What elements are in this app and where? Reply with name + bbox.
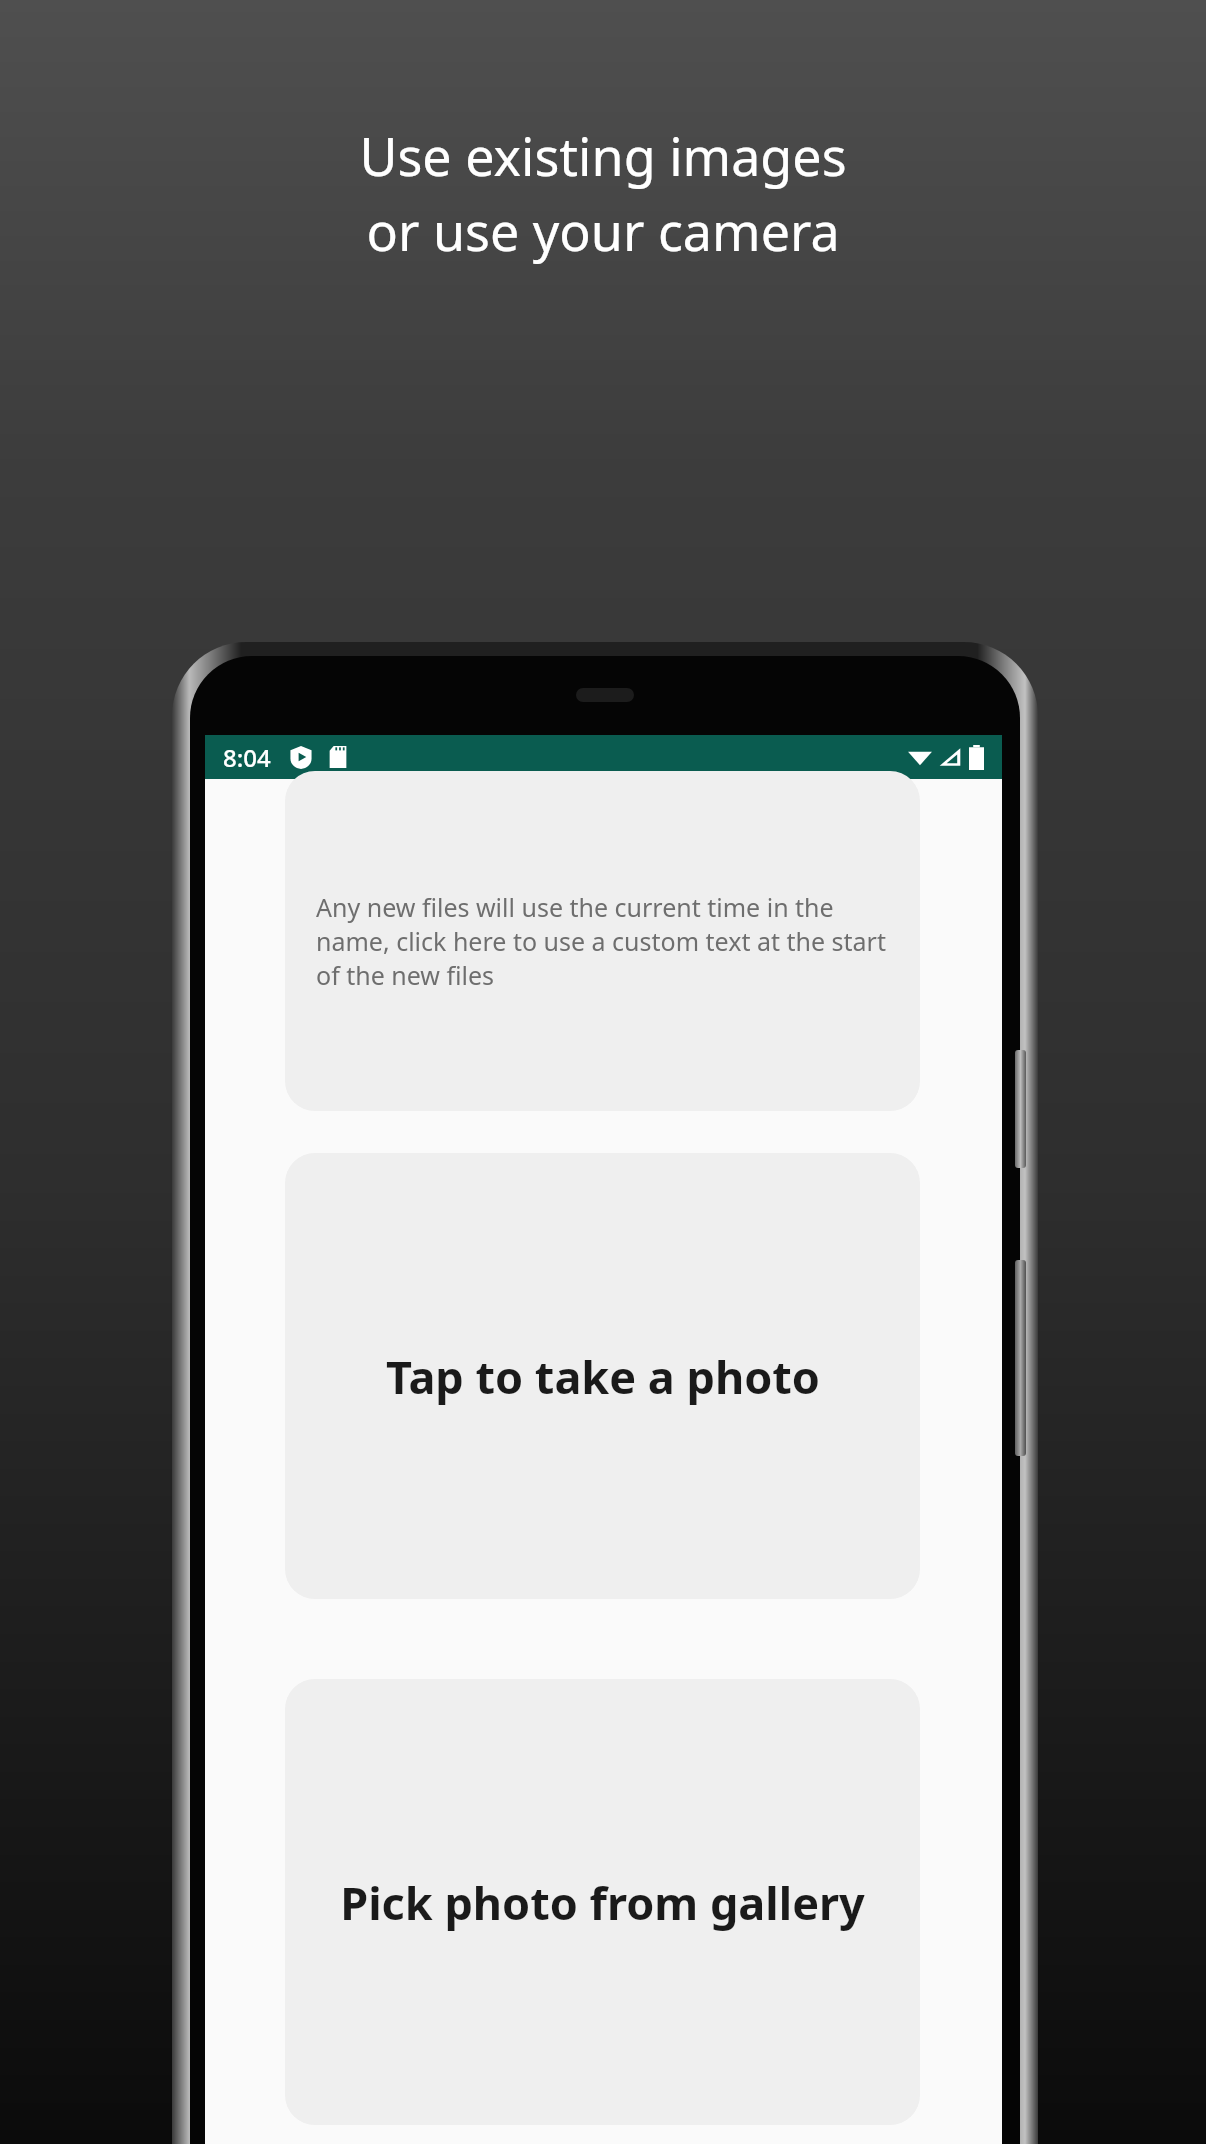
button[interactable]: Tap to take a photo: [285, 1153, 920, 1599]
button[interactable]: Any new files will use the current time …: [285, 771, 920, 1111]
staticText: Tap to take a photo: [386, 1346, 820, 1407]
staticText: Pick photo from gallery: [340, 1872, 865, 1933]
other: Protected: [289, 745, 313, 769]
staticText: Any new files will use the current time …: [316, 890, 889, 992]
button[interactable]: Pick photo from gallery: [285, 1679, 920, 2125]
other: Mobile signal: [938, 745, 962, 769]
staticText: Use existing images: [359, 120, 847, 191]
other: Wi-Fi: [907, 744, 933, 770]
other: SD card: [327, 746, 349, 768]
other: Battery: [969, 745, 984, 770]
staticText: 8:04: [223, 741, 271, 774]
staticText: or use your camera: [366, 195, 840, 266]
